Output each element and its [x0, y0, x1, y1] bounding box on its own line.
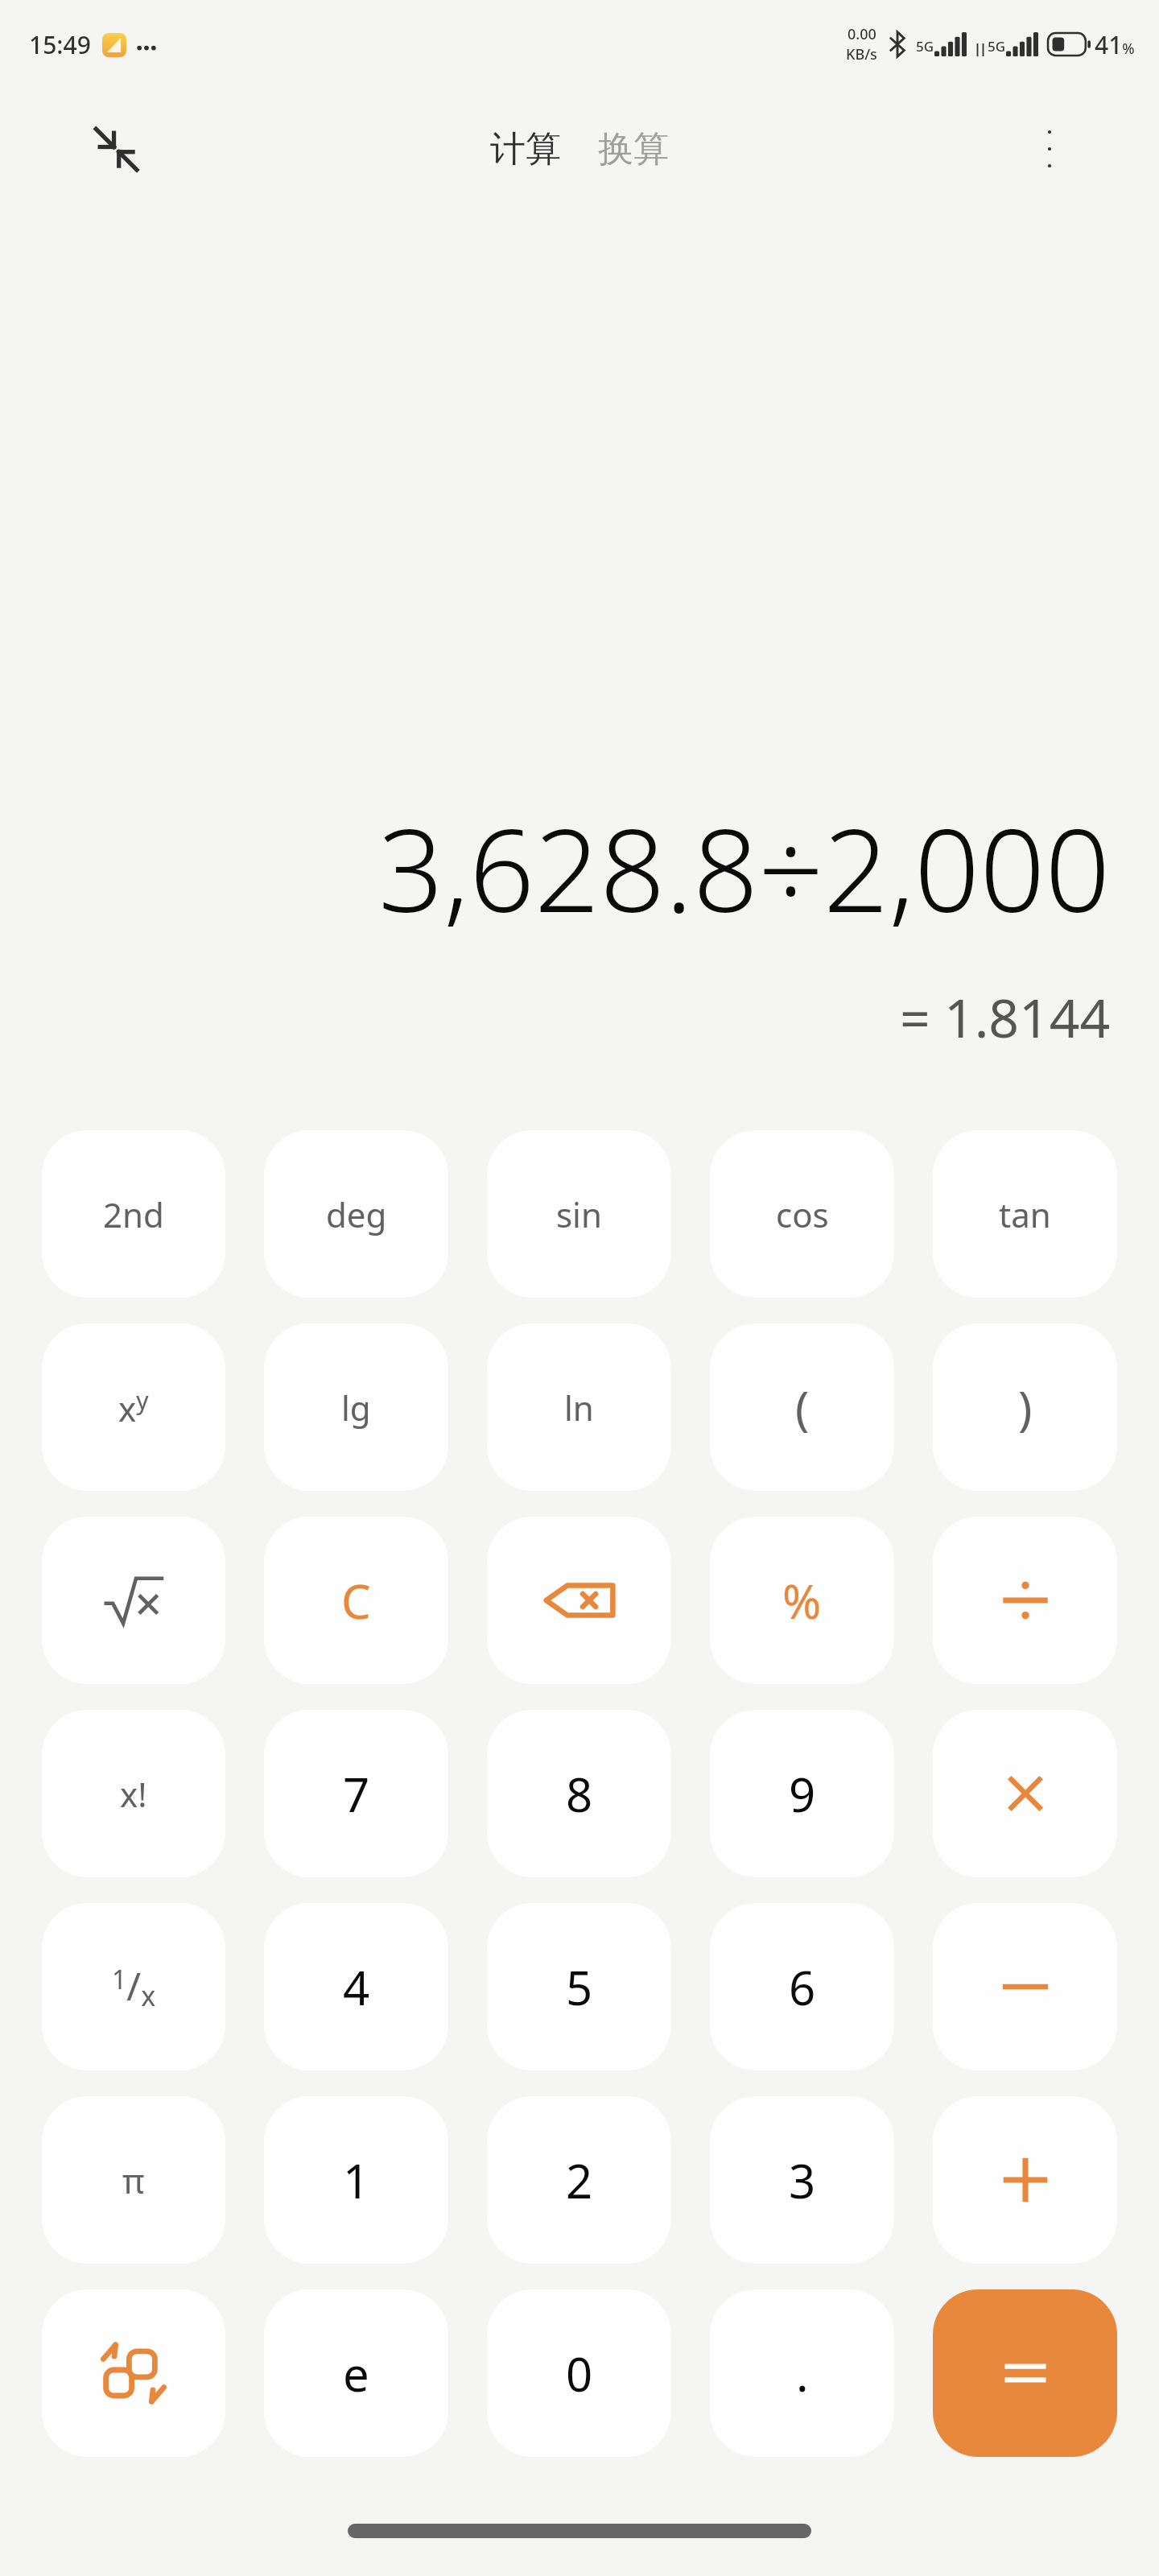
- staticText: 3,628.8÷2,000: [378, 790, 1111, 945]
- staticText: KB/s: [846, 44, 877, 64]
- button[interactable]: Minus: [933, 1903, 1117, 2070]
- button[interactable]: 换算: [587, 119, 680, 180]
- button[interactable]: (: [710, 1323, 894, 1491]
- button[interactable]: 3: [710, 2096, 894, 2264]
- staticText: 换算: [598, 127, 669, 171]
- button[interactable]: lg: [264, 1323, 448, 1491]
- staticText: ln: [564, 1385, 594, 1430]
- button[interactable]: Random: [42, 2289, 225, 2457]
- staticText: 2: [566, 2149, 593, 2212]
- button[interactable]: 7: [264, 1710, 448, 1877]
- staticText: xy: [118, 1384, 149, 1431]
- staticText: (: [795, 1376, 810, 1439]
- button[interactable]: cos: [710, 1130, 894, 1298]
- staticText: 5G: [916, 37, 934, 56]
- staticText: 1: [343, 2149, 370, 2212]
- staticText: 41%: [1095, 28, 1135, 61]
- staticText: 6: [789, 1955, 816, 2019]
- staticText: 8: [566, 1762, 593, 1826]
- button[interactable]: tan: [933, 1130, 1117, 1298]
- staticText: tan: [999, 1191, 1051, 1237]
- staticText: 15:49: [29, 28, 91, 61]
- button[interactable]: 2: [487, 2096, 671, 2264]
- staticText: = 1.8144: [900, 980, 1111, 1053]
- button[interactable]: More options: [1011, 110, 1088, 188]
- button[interactable]: sin: [487, 1130, 671, 1298]
- button[interactable]: one over x: [42, 1903, 225, 2070]
- button[interactable]: e: [264, 2289, 448, 2457]
- button[interactable]: x to the power y: [42, 1323, 225, 1491]
- button[interactable]: 计算: [479, 119, 572, 180]
- staticText: 9: [789, 1762, 816, 1826]
- staticText: cos: [776, 1191, 829, 1237]
- button[interactable]: 0: [487, 2289, 671, 2457]
- button[interactable]: 4: [264, 1903, 448, 2070]
- staticText: %: [782, 1569, 822, 1633]
- staticText: C: [341, 1569, 371, 1633]
- staticText: 3: [789, 2149, 816, 2212]
- staticText: 7: [343, 1762, 370, 1826]
- button[interactable]: .: [710, 2289, 894, 2457]
- button[interactable]: Equals: [933, 2289, 1117, 2457]
- staticText: 0: [566, 2342, 593, 2405]
- button[interactable]: deg: [264, 1130, 448, 1298]
- staticText: ): [1018, 1376, 1033, 1439]
- staticText: 1/x: [112, 1959, 156, 2014]
- button[interactable]: Plus: [933, 2096, 1117, 2264]
- button[interactable]: Delete: [487, 1517, 671, 1684]
- staticText: 5G: [988, 37, 1006, 56]
- button[interactable]: 9: [710, 1710, 894, 1877]
- button[interactable]: 1: [264, 2096, 448, 2264]
- button[interactable]: x!: [42, 1710, 225, 1877]
- button[interactable]: ln: [487, 1323, 671, 1491]
- button[interactable]: %: [710, 1517, 894, 1684]
- button[interactable]: 5: [487, 1903, 671, 2070]
- button[interactable]: ): [933, 1323, 1117, 1491]
- button[interactable]: 6: [710, 1903, 894, 2070]
- staticText: sin: [556, 1191, 602, 1237]
- staticText: 0.00: [848, 24, 876, 44]
- button[interactable]: square root: [42, 1517, 225, 1684]
- button[interactable]: 8: [487, 1710, 671, 1877]
- button[interactable]: Collapse: [77, 110, 155, 188]
- staticText: x!: [120, 1771, 147, 1817]
- staticText: .: [796, 2342, 809, 2405]
- button[interactable]: 2nd: [42, 1130, 225, 1298]
- staticText: 5: [566, 1955, 593, 2019]
- staticText: lg: [341, 1385, 371, 1430]
- staticText: e: [343, 2342, 369, 2405]
- button[interactable]: Divide: [933, 1517, 1117, 1684]
- staticText: π: [122, 2157, 145, 2203]
- staticText: 2nd: [103, 1191, 164, 1237]
- button[interactable]: Multiply: [933, 1710, 1117, 1877]
- button[interactable]: C: [264, 1517, 448, 1684]
- staticText: 4: [343, 1955, 370, 2019]
- button[interactable]: π: [42, 2096, 225, 2264]
- staticText: 计算: [490, 127, 561, 171]
- staticText: deg: [326, 1191, 387, 1237]
